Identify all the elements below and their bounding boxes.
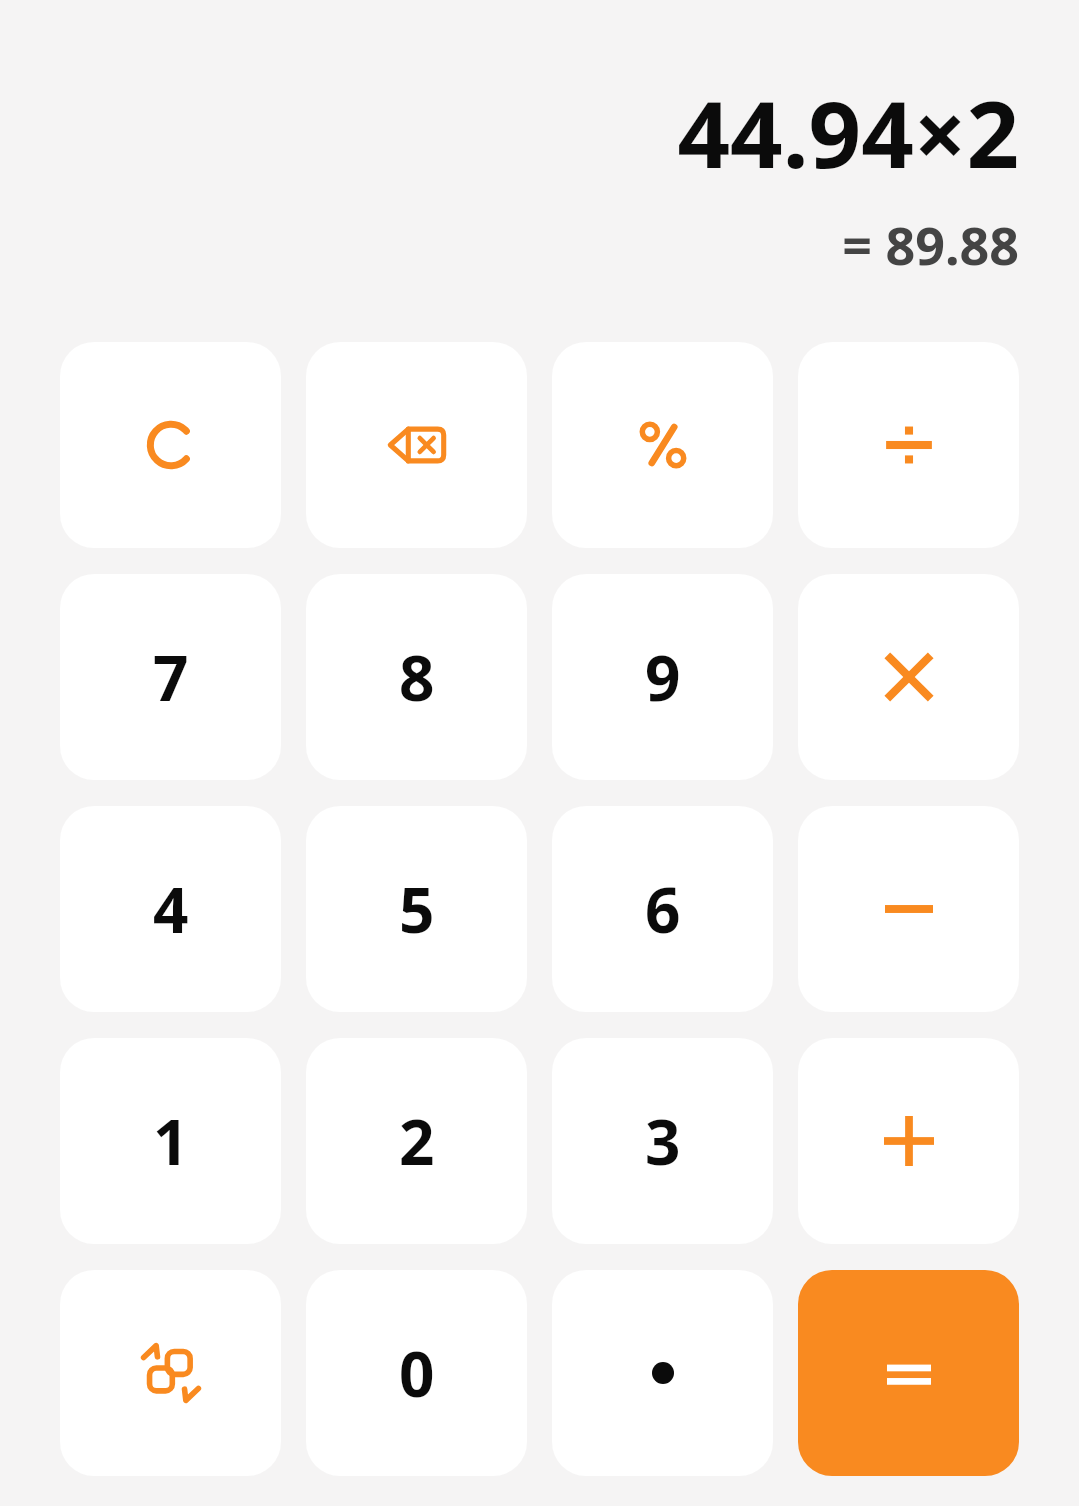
button[interactable]: Percent: [552, 342, 773, 548]
button[interactable]: 4: [60, 806, 281, 1012]
button[interactable]: Decimal point: [552, 1270, 773, 1476]
staticText: 0: [399, 1331, 435, 1415]
staticText: 5: [399, 867, 435, 951]
button[interactable]: Backspace: [306, 342, 527, 548]
staticText: 9: [645, 635, 681, 719]
staticText: 44.94×2: [677, 70, 1019, 195]
button[interactable]: Divide: [798, 342, 1019, 548]
staticText: = 89.88: [842, 209, 1019, 280]
button[interactable]: Multiply: [798, 574, 1019, 780]
staticText: 4: [153, 867, 189, 951]
button[interactable]: 0: [306, 1270, 527, 1476]
button[interactable]: Minus: [798, 806, 1019, 1012]
button[interactable]: Clear: [60, 342, 281, 548]
button[interactable]: 9: [552, 574, 773, 780]
button[interactable]: 5: [306, 806, 527, 1012]
button[interactable]: 3: [552, 1038, 773, 1244]
button[interactable]: 7: [60, 574, 281, 780]
button[interactable]: 8: [306, 574, 527, 780]
button[interactable]: Convert units: [60, 1270, 281, 1476]
button[interactable]: 6: [552, 806, 773, 1012]
staticText: 2: [399, 1099, 435, 1183]
staticText: 3: [645, 1099, 681, 1183]
button[interactable]: Equals: [798, 1270, 1019, 1476]
staticText: 8: [399, 635, 435, 719]
button[interactable]: Plus: [798, 1038, 1019, 1244]
staticText: 6: [645, 867, 681, 951]
button[interactable]: 1: [60, 1038, 281, 1244]
button[interactable]: 2: [306, 1038, 527, 1244]
staticText: 7: [153, 635, 189, 719]
staticText: 1: [153, 1099, 189, 1183]
